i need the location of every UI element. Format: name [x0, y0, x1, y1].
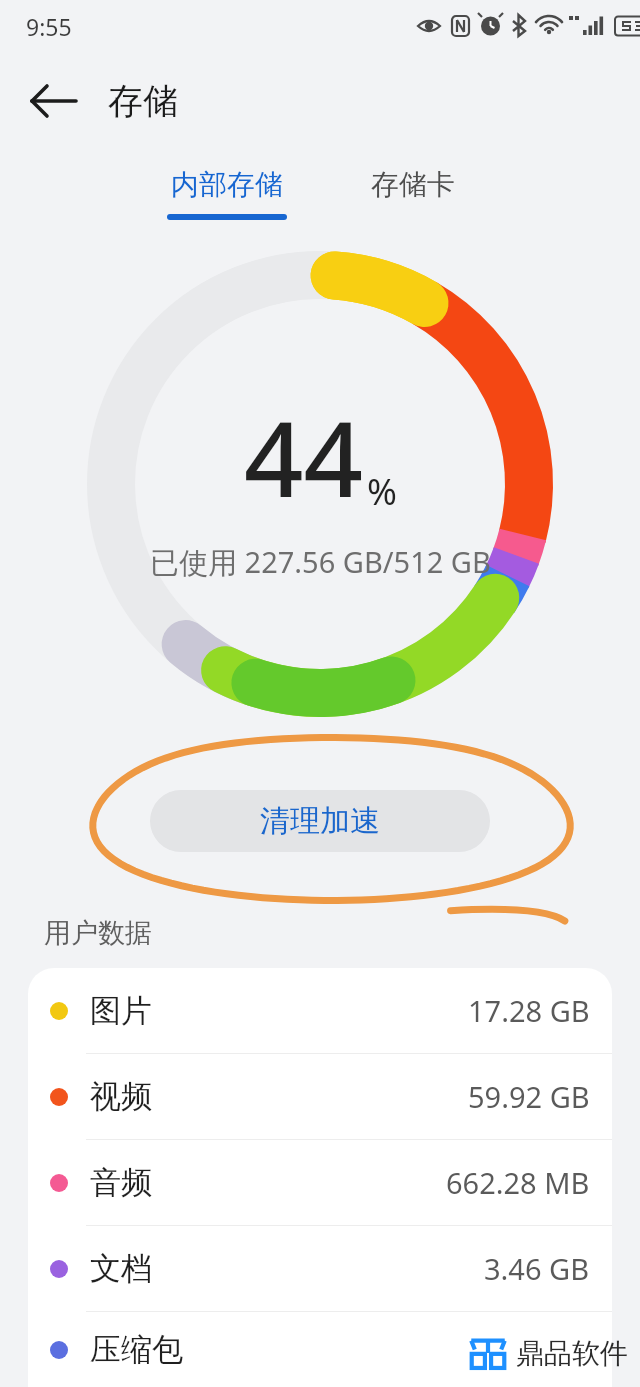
button[interactable]: 内部存储 [163, 167, 291, 220]
button[interactable]: 图片 [28, 968, 612, 1053]
staticText: 内部存储 [171, 167, 283, 202]
staticText: 图片 [90, 991, 152, 1030]
staticText: 音频 [90, 1163, 152, 1202]
staticText: 59.92 GB [468, 1077, 590, 1116]
staticText: 压缩包 [90, 1330, 183, 1369]
button[interactable]: 文档 [28, 1226, 612, 1311]
button[interactable]: Back [26, 73, 82, 129]
staticText: % [367, 467, 397, 516]
button[interactable]: 音频 [28, 1140, 612, 1225]
staticText: 鼎品软件 [516, 1336, 628, 1371]
staticText: 用户数据 [44, 916, 152, 950]
button[interactable]: 存储卡 [349, 167, 477, 220]
staticText: 文档 [90, 1249, 152, 1288]
staticText: 662.28 MB [446, 1163, 590, 1202]
button[interactable]: 压缩包 [28, 1312, 612, 1387]
staticText: 视频 [90, 1077, 152, 1116]
staticText: 存储 [108, 79, 178, 123]
staticText: 清理加速 [260, 802, 380, 840]
staticText: 17.28 GB [468, 991, 590, 1030]
staticText: 44 [244, 386, 363, 528]
button[interactable]: 视频 [28, 1054, 612, 1139]
staticText: 3.46 GB [484, 1249, 590, 1288]
staticText: 已使用 227.56 GB/512 GB [150, 542, 491, 582]
staticText: 存储卡 [371, 167, 455, 202]
staticText: 9:55 [26, 11, 72, 42]
button[interactable]: 清理加速 [150, 790, 490, 852]
